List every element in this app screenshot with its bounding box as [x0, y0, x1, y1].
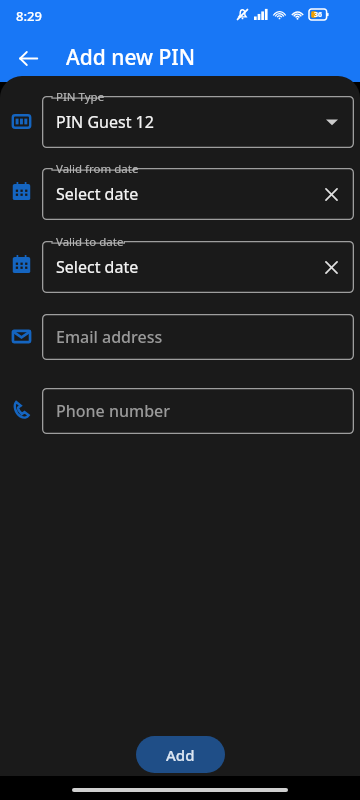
staticText: Valid to date	[56, 234, 124, 250]
staticText: 8:29	[16, 7, 42, 25]
button[interactable]: Clear date	[316, 252, 346, 282]
other: Calendar	[8, 251, 34, 277]
button[interactable]: Valid to date	[42, 241, 354, 293]
button[interactable]: PIN Type	[42, 96, 354, 148]
button[interactable]: Back	[8, 38, 48, 78]
staticText: Add	[166, 745, 195, 765]
button[interactable]: Email address	[42, 314, 354, 360]
staticText: Select date	[56, 183, 139, 205]
other: Phone	[8, 396, 34, 422]
staticText: Add new PIN	[66, 43, 196, 72]
staticText: Select date	[56, 256, 139, 278]
staticText: PIN Guest 12	[56, 111, 154, 133]
staticText: Phone number	[56, 400, 171, 422]
button[interactable]: Add	[136, 736, 225, 773]
staticText: 36	[314, 10, 323, 20]
button[interactable]: Clear date	[316, 179, 346, 209]
button[interactable]: Phone number	[42, 388, 354, 434]
other: Email	[8, 323, 34, 349]
button[interactable]: Open dropdown	[318, 108, 346, 136]
staticText: Email address	[56, 326, 163, 348]
other: Calendar	[8, 178, 34, 204]
button[interactable]: Valid from date	[42, 168, 354, 220]
staticText: Valid from date	[56, 161, 139, 177]
other: PIN type	[8, 108, 34, 134]
staticText: PIN Type	[56, 89, 105, 105]
